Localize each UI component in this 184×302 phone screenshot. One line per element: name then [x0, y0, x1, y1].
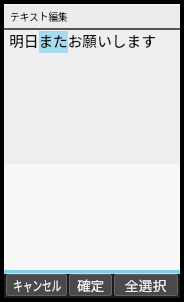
staticText: 確定: [77, 275, 105, 295]
staticText: 明日またお願いします: [9, 30, 156, 51]
staticText: キャンセル: [13, 275, 62, 295]
button[interactable]: キャンセル: [7, 275, 66, 295]
button[interactable]: 確定: [70, 275, 111, 295]
button[interactable]: 明日またお願いします: [4, 30, 180, 164]
button[interactable]: 全選択: [115, 275, 177, 295]
staticText: 全選択: [125, 275, 167, 295]
staticText: テキスト編集: [10, 9, 68, 24]
